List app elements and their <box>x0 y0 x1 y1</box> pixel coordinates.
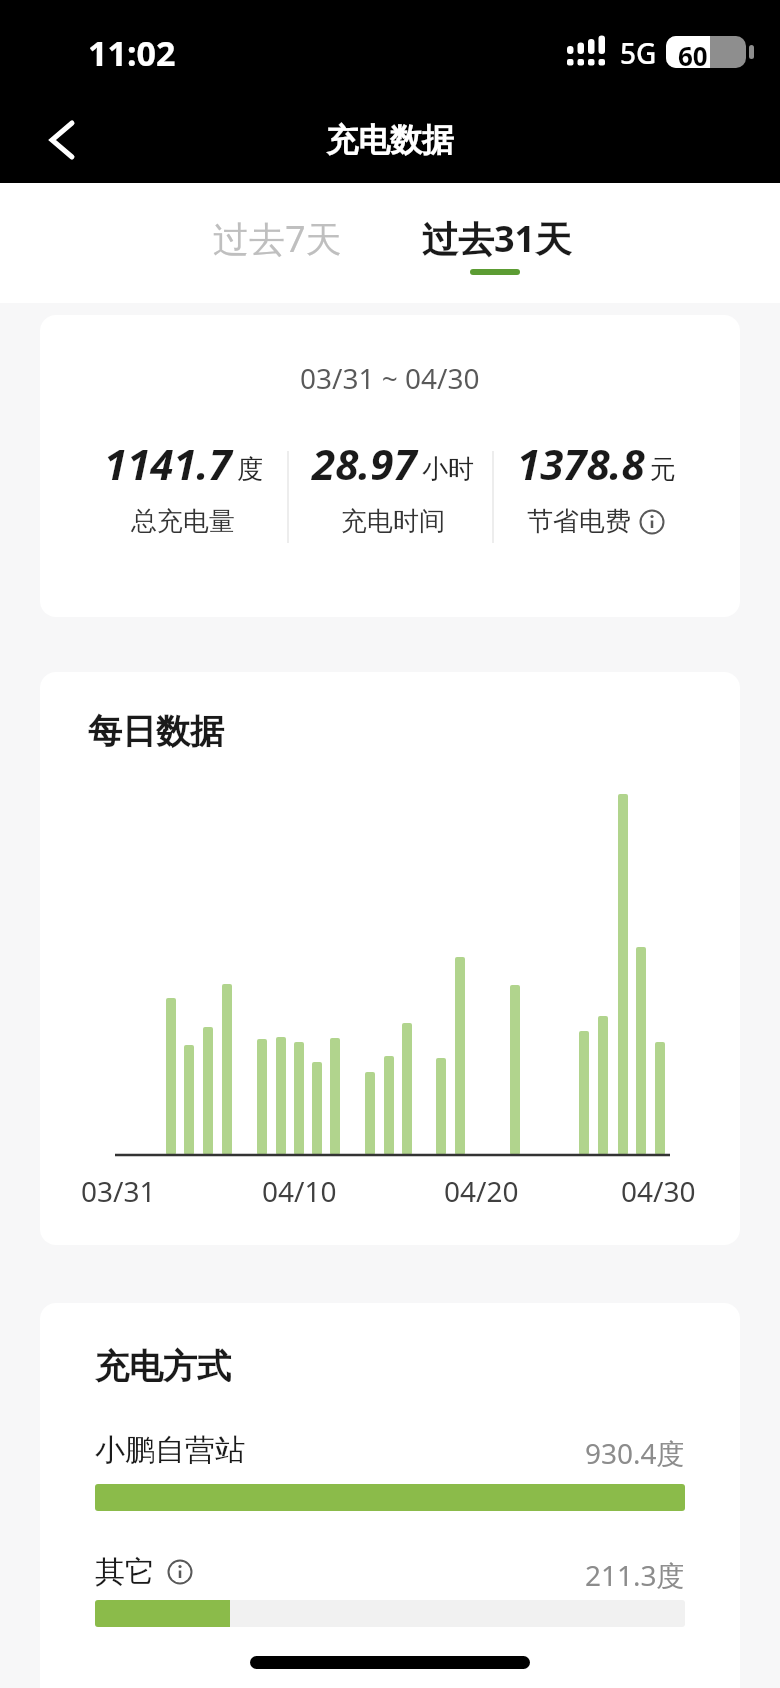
staticText: 03/31 <box>81 1172 156 1210</box>
staticText: 过去7天 <box>213 214 342 263</box>
staticText: 充电方式 <box>95 1345 231 1388</box>
staticText: 充电时间 <box>341 505 445 538</box>
staticText: 小时 <box>422 453 474 486</box>
staticText: 60 <box>678 38 708 73</box>
staticText: 04/20 <box>444 1172 519 1210</box>
staticText: 每日数据 <box>88 710 224 753</box>
staticText: 04/30 <box>621 1172 696 1210</box>
button[interactable]: 过去31天 <box>412 193 582 283</box>
staticText: 11:02 <box>88 30 176 76</box>
button[interactable]: 1378.8 <box>456 435 736 538</box>
staticText: 28.97 <box>312 435 417 492</box>
staticText: 节省电费 <box>527 505 631 538</box>
button[interactable]: 28.97 <box>253 435 533 538</box>
staticText: 总充电量 <box>131 505 235 538</box>
button[interactable] <box>30 105 94 175</box>
button[interactable]: 1141.7 <box>43 435 323 538</box>
staticText: 小鹏自营站 <box>95 1431 245 1469</box>
staticText: 元 <box>650 453 676 486</box>
staticText: 04/10 <box>262 1172 337 1210</box>
staticText: 211.3度 <box>585 1556 685 1594</box>
button[interactable]: 过去7天 <box>197 193 357 283</box>
staticText: 5G <box>620 34 657 72</box>
button[interactable] <box>95 1600 685 1627</box>
staticText: 充电数据 <box>326 120 454 160</box>
staticText: 其它 <box>95 1553 155 1591</box>
staticText: 1378.8 <box>517 435 645 492</box>
staticText: 930.4度 <box>585 1434 685 1472</box>
staticText: 度 <box>237 453 263 486</box>
button[interactable] <box>639 509 665 535</box>
button[interactable] <box>167 1559 193 1585</box>
staticText: 03/31 ~ 04/30 <box>300 359 480 397</box>
staticText: 过去31天 <box>422 214 572 263</box>
staticText: 1141.7 <box>104 435 232 492</box>
